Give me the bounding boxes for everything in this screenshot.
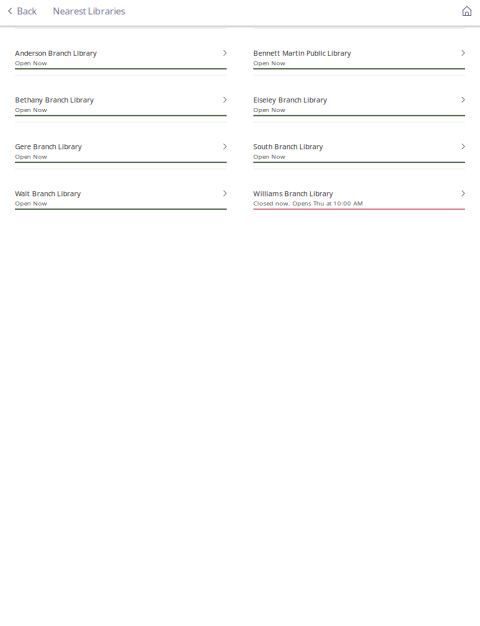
staticText: Open Now <box>253 152 285 161</box>
button[interactable]: South Branch Library <box>253 142 465 163</box>
button[interactable]: Home <box>462 0 480 22</box>
button[interactable]: Bennett Martin Public Library <box>253 48 465 69</box>
button[interactable]: Bethany Branch Library <box>15 95 227 116</box>
staticText: Walt Branch Library <box>15 189 81 198</box>
staticText: Open Now <box>15 152 47 161</box>
staticText: Open Now <box>15 199 47 207</box>
staticText: Nearest Libraries <box>53 5 125 17</box>
button[interactable]: Walt Branch Library <box>15 189 227 210</box>
staticText: Williams Branch Library <box>253 189 333 198</box>
button[interactable]: Back <box>0 0 39 22</box>
staticText: Bennett Martin Public Library <box>253 48 351 58</box>
button[interactable]: Williams Branch Library <box>253 189 465 210</box>
staticText: Gere Branch Library <box>15 142 82 151</box>
staticText: Open Now <box>253 59 285 67</box>
staticText: Bethany Branch Library <box>15 95 94 105</box>
button[interactable]: Eiseley Branch Library <box>253 95 465 116</box>
staticText: Anderson Branch Library <box>15 48 97 58</box>
button[interactable]: Anderson Branch Library <box>15 48 227 69</box>
staticText: Open Now <box>253 105 285 114</box>
staticText: Back <box>17 5 37 17</box>
staticText: South Branch Library <box>253 142 323 151</box>
staticText: Closed now. Opens Thu at 10:00 AM <box>253 199 363 207</box>
staticText: Eiseley Branch Library <box>253 95 327 105</box>
staticText: Open Now <box>15 105 47 114</box>
staticText: Open Now <box>15 59 47 67</box>
button[interactable]: Gere Branch Library <box>15 142 227 163</box>
